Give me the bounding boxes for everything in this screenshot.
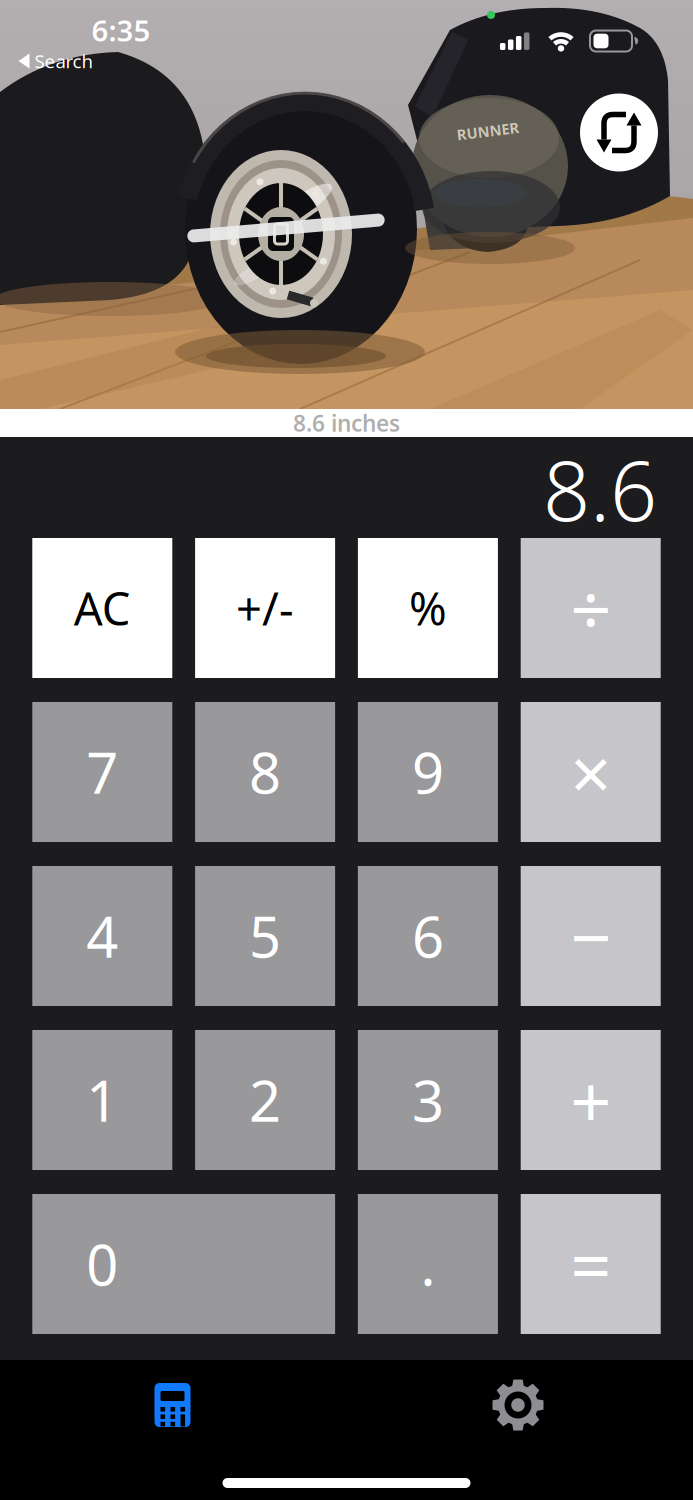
staticText: Search — [34, 49, 93, 73]
button[interactable]: +/- — [195, 538, 335, 678]
staticText: 7 — [86, 735, 118, 809]
button[interactable]: Settings — [438, 1360, 598, 1450]
button[interactable]: 6 — [358, 866, 498, 1006]
button[interactable]: Calculator — [92, 1360, 252, 1450]
staticText: + — [570, 1052, 611, 1148]
button[interactable]: 2 — [195, 1030, 335, 1170]
button[interactable]: = — [521, 1194, 661, 1334]
button[interactable]: 9 — [358, 702, 498, 842]
button[interactable]: 5 — [195, 866, 335, 1006]
staticText: 8 — [249, 735, 281, 809]
staticText: 0 — [86, 1227, 118, 1301]
staticText: 5 — [249, 899, 281, 973]
staticText: . — [420, 1227, 435, 1301]
staticText: 8.6 inches — [293, 408, 400, 438]
button[interactable]: Back to Search — [18, 49, 93, 73]
staticText: 6:35 — [91, 10, 150, 49]
button[interactable]: − — [521, 866, 661, 1006]
staticText: 9 — [412, 735, 444, 809]
staticText: % — [409, 578, 447, 638]
button[interactable]: 7 — [32, 702, 172, 842]
button[interactable]: × — [521, 702, 661, 842]
staticText: 8.6 — [543, 434, 657, 544]
staticText: RUNNER — [456, 121, 519, 141]
staticText: = — [570, 1216, 611, 1312]
button[interactable]: AC — [32, 538, 172, 678]
button[interactable]: ÷ — [521, 538, 661, 678]
staticText: ÷ — [570, 560, 611, 656]
staticText: +/- — [236, 578, 294, 638]
button[interactable]: 0 — [32, 1194, 335, 1334]
button[interactable]: Flip — [580, 93, 658, 171]
staticText: 1 — [86, 1063, 118, 1137]
button[interactable]: % — [358, 538, 498, 678]
staticText: 4 — [86, 899, 118, 973]
button[interactable]: 8 — [195, 702, 335, 842]
staticText: 2 — [249, 1063, 281, 1137]
button[interactable]: 4 — [32, 866, 172, 1006]
button[interactable]: 1 — [32, 1030, 172, 1170]
button[interactable]: + — [521, 1030, 661, 1170]
staticText: − — [570, 888, 611, 984]
staticText: 6 — [412, 899, 444, 973]
staticText: AC — [74, 578, 131, 638]
button[interactable]: . — [358, 1194, 498, 1334]
staticText: 3 — [412, 1063, 444, 1137]
staticText: × — [570, 724, 611, 820]
button[interactable]: 3 — [358, 1030, 498, 1170]
